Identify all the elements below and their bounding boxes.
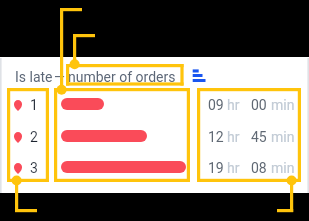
staticText: min [271,129,295,145]
staticText: hr [227,160,240,176]
button[interactable]: 12 [208,128,295,146]
button[interactable]: Sort by number of orders [191,66,209,84]
button[interactable] [61,130,147,142]
staticText: 3 [30,160,38,176]
staticText: min [271,160,295,176]
staticText: 00 [251,97,267,113]
button[interactable] [61,98,104,110]
staticText: Is late [15,69,53,85]
staticText: hr [227,129,240,145]
button[interactable]: 1 [14,96,48,114]
button[interactable]: 19 [208,159,295,177]
staticText: min [271,97,295,113]
button[interactable] [61,161,186,173]
staticText: 2 [30,129,38,145]
staticText: — [54,69,65,85]
button[interactable]: 3 [14,159,48,177]
staticText: number of orders [68,69,176,85]
staticText: hr [227,97,240,113]
button[interactable]: Is late [15,68,176,85]
staticText: 19 [208,160,224,176]
staticText: 1 [30,97,38,113]
staticText: 09 [208,97,224,113]
staticText: 12 [208,129,224,145]
staticText: 08 [251,160,267,176]
button[interactable]: 2 [14,128,48,146]
staticText: 45 [251,129,267,145]
button[interactable]: 09 [208,96,295,114]
